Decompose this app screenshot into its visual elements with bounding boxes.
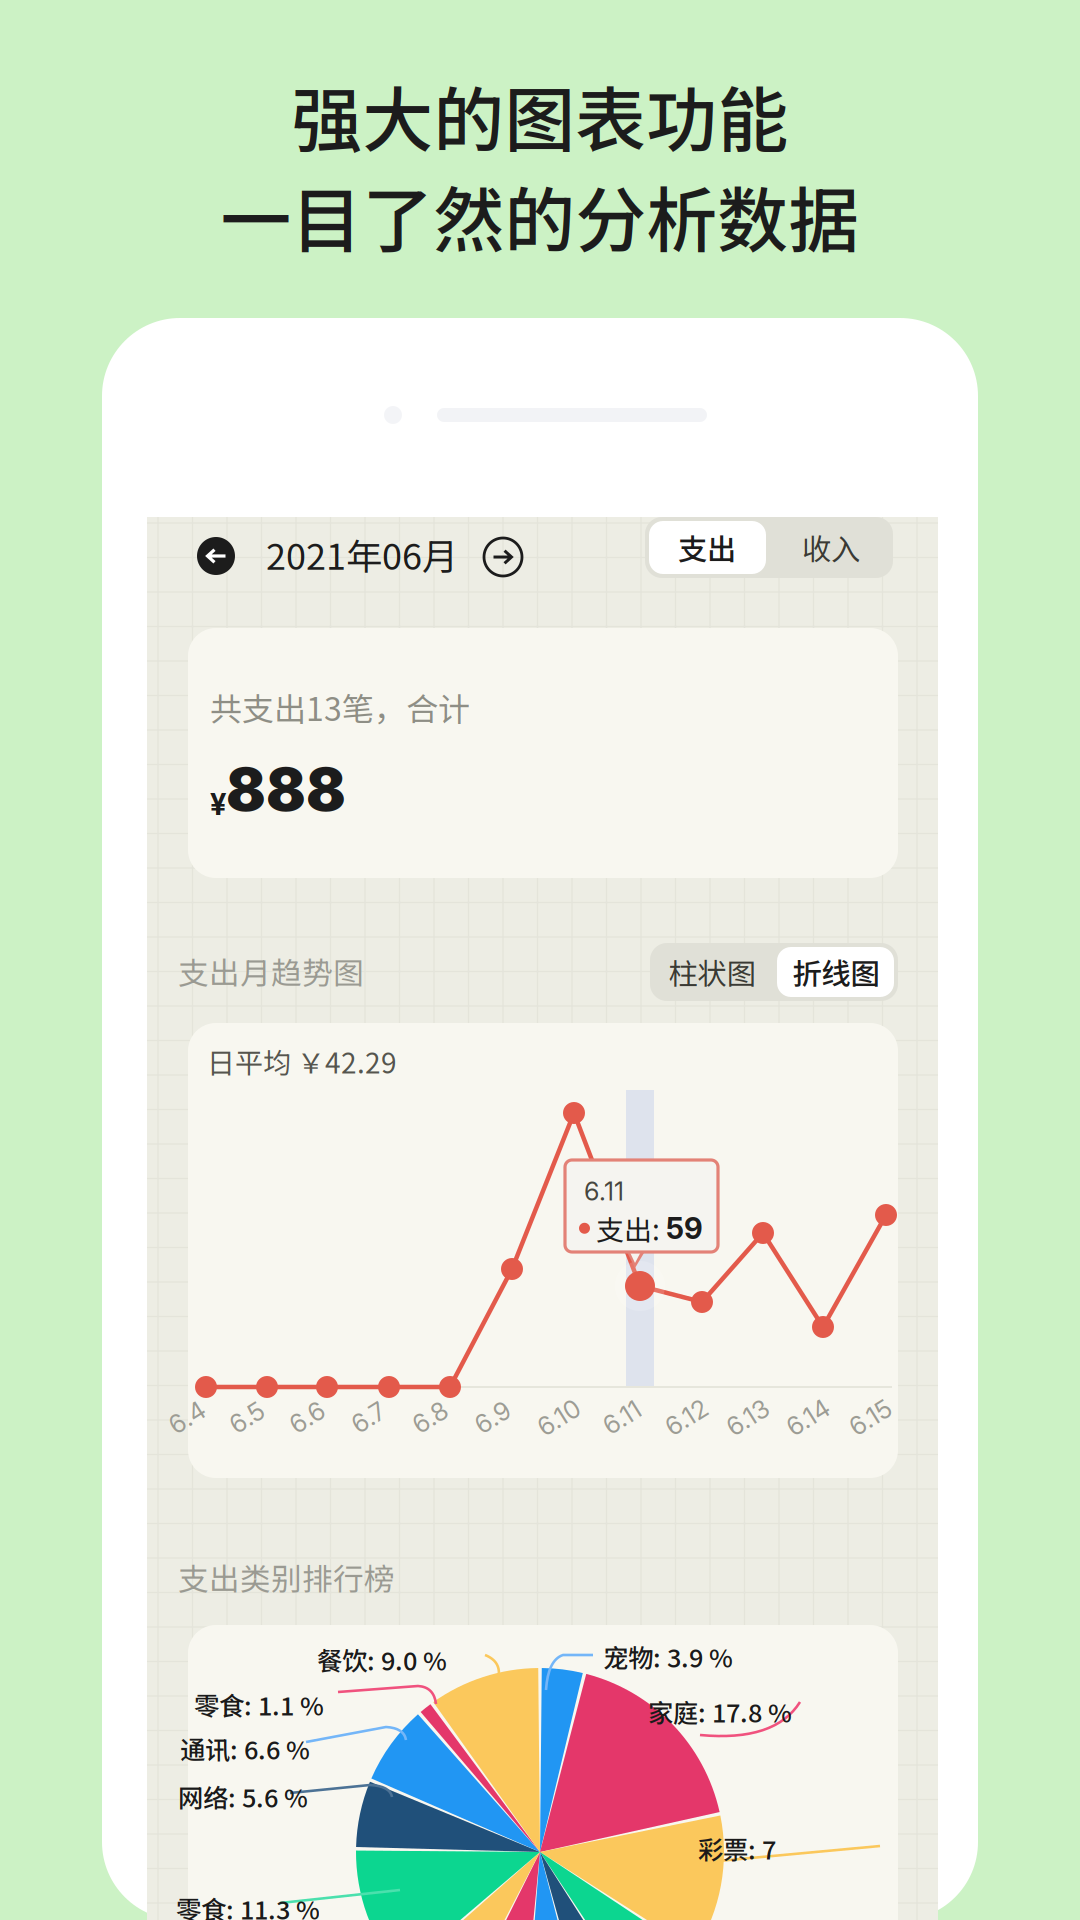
staticText: 6.8 <box>412 1402 448 1433</box>
staticText: 网络: 5.6 % <box>178 1778 308 1815</box>
staticText: 6.9 <box>474 1402 511 1433</box>
staticText: 强大的图表功能 <box>291 64 788 166</box>
button[interactable]: Previous month <box>197 537 235 575</box>
staticText: 折线图 <box>792 951 879 993</box>
staticText: 2021年06月 <box>266 528 458 580</box>
staticText: 共支出13笔，合计 <box>210 684 470 730</box>
staticText: 6.13 <box>725 1402 771 1433</box>
staticText: 通讯: 6.6 % <box>180 1730 310 1767</box>
staticText: 6.4 <box>168 1402 206 1433</box>
staticText: 支出: <box>596 1208 660 1248</box>
staticText: 一目了然的分析数据 <box>220 164 859 267</box>
staticText: 6.14 <box>785 1402 831 1433</box>
button[interactable]: 折线图 <box>774 943 898 1001</box>
staticText: 宠物: 3.9 % <box>603 1638 733 1675</box>
button[interactable]: 柱状图 <box>650 943 774 1001</box>
staticText: 6.6 <box>289 1402 325 1433</box>
staticText: 收入 <box>802 526 860 569</box>
staticText: 59 <box>666 1210 703 1246</box>
staticText: 柱状图 <box>668 951 755 993</box>
staticText: 6.11 <box>602 1402 642 1433</box>
staticText: 888 <box>226 754 346 825</box>
staticText: 支出 <box>678 526 736 569</box>
staticText: 支出类别排行榜 <box>178 1555 395 1599</box>
staticText: 彩票: 7 <box>698 1830 776 1867</box>
staticText: 日平均 ￥42.29 <box>207 1041 397 1081</box>
staticText: 6.11 <box>584 1176 624 1207</box>
staticText: 6.7 <box>351 1402 386 1433</box>
staticText: 6.5 <box>229 1402 265 1433</box>
staticText: 6.15 <box>848 1402 893 1433</box>
staticText: 零食: 11.3 % <box>176 1890 320 1920</box>
staticText: 家庭: 17.8 % <box>648 1693 792 1730</box>
button[interactable]: 2021年06月 <box>266 530 486 578</box>
staticText: 零食: 1.1 % <box>194 1686 324 1723</box>
staticText: 餐饮: 9.0 % <box>317 1641 447 1678</box>
staticText: 6.12 <box>664 1402 709 1433</box>
staticText: 支出月趋势图 <box>178 949 364 993</box>
button[interactable]: Next month <box>483 537 523 577</box>
button[interactable]: 收入 <box>769 517 893 578</box>
staticText: 6.10 <box>536 1402 582 1433</box>
staticText: ¥ <box>210 786 226 822</box>
button[interactable]: 支出 <box>645 517 769 578</box>
